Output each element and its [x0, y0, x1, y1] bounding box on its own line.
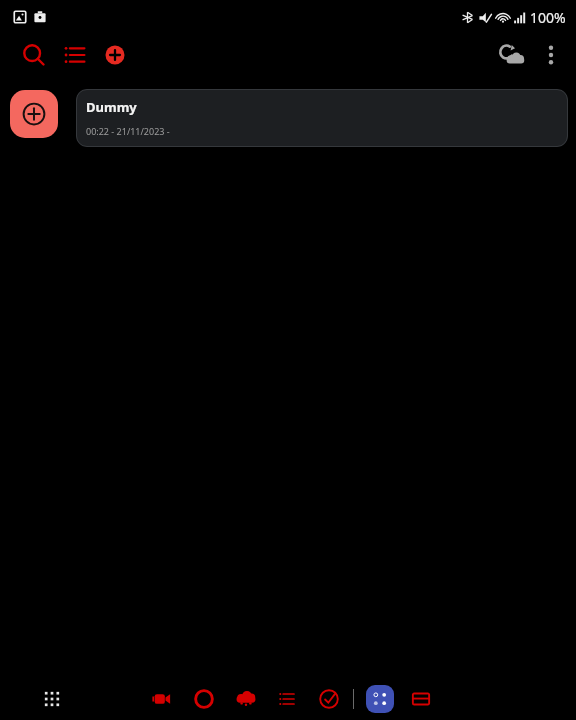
button[interactable]: More options	[538, 38, 564, 72]
button[interactable]: Create new	[10, 90, 58, 138]
button[interactable]: All apps	[36, 683, 68, 715]
button[interactable]: App	[407, 685, 435, 713]
staticText: Dummy	[86, 98, 137, 116]
button[interactable]: App	[315, 685, 343, 713]
button[interactable]: App	[148, 685, 176, 713]
button[interactable]: Add	[100, 40, 130, 70]
button[interactable]: Search	[18, 39, 50, 71]
staticText: 100%	[530, 8, 566, 27]
button[interactable]: Cloud sync	[496, 38, 530, 72]
button[interactable]: Dummy	[76, 89, 568, 147]
staticText: 00:22 - 21/11/2023 -	[86, 125, 170, 137]
button[interactable]: App	[232, 685, 260, 713]
button[interactable]: Sort list	[59, 39, 91, 71]
button[interactable]: App	[273, 685, 301, 713]
button[interactable]: Current app	[366, 685, 394, 713]
button[interactable]: App	[190, 685, 218, 713]
